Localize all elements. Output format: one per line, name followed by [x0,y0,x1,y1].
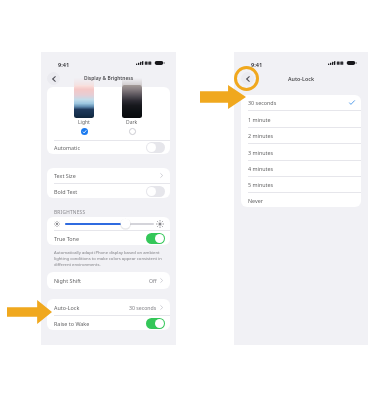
button[interactable]: 5 minutes [241,177,361,192]
button[interactable]: 4 minutes [241,161,361,176]
staticText: 9:41 [251,61,263,69]
staticText: True Tone [54,235,79,242]
staticText: BRIGHTNESS [54,209,86,215]
button[interactable]: 1 minute [241,111,361,127]
staticText: Raise to Wake [54,320,90,327]
staticText: 1 minute [248,116,271,123]
staticText: Auto-Lock [54,304,80,311]
staticText: Display & Brightness [41,75,176,82]
staticText: 2 minutes [248,132,274,139]
staticText: Night Shift [54,277,81,284]
staticText: 5 minutes [248,181,274,188]
button[interactable]: Back [241,72,254,85]
button[interactable]: Night Shift [47,272,170,289]
button[interactable]: Text Size [47,168,170,183]
button[interactable]: Bold Text [47,184,170,198]
staticText: Automatically adapt iPhone display based… [54,250,162,268]
staticText: 3 minutes [248,149,274,156]
staticText: 30 seconds [129,304,157,311]
staticText: Dark [126,119,138,126]
button[interactable]: On [146,233,165,244]
button[interactable]: Off [146,142,165,153]
staticText: Light [78,119,90,126]
staticText: Text Size [54,172,76,179]
staticText: 30 seconds [248,99,277,106]
button[interactable]: True Tone [47,231,170,245]
button[interactable]: Off [146,186,165,197]
button[interactable]: Auto-Lock [47,299,170,315]
staticText: Bold Text [54,188,78,195]
button[interactable] [74,85,94,118]
button[interactable]: 3 minutes [241,144,361,160]
button[interactable]: Back [47,72,60,85]
button[interactable] [122,85,142,118]
staticText: Automatic [54,144,80,151]
button[interactable]: 2 minutes [241,128,361,143]
staticText: Never [248,197,264,204]
button[interactable]: Automatic [47,141,170,154]
staticText: Auto-Lock [234,75,368,82]
button[interactable]: Raise to Wake [47,316,170,330]
staticText: Off [149,277,157,284]
button[interactable]: 30 seconds [241,95,361,110]
button[interactable]: On [146,318,165,329]
staticText: 9:41 [58,61,70,69]
staticText: 4 minutes [248,165,274,172]
button[interactable]: Never [241,193,361,207]
